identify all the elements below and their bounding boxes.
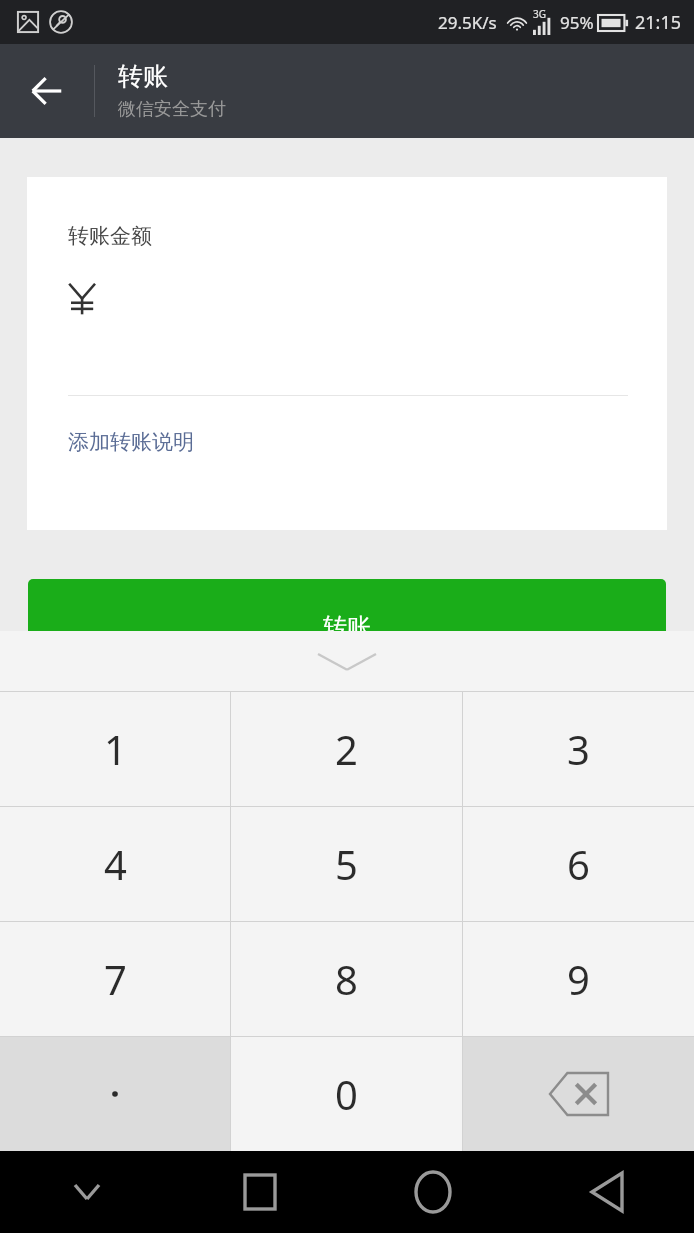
button[interactable]: 6 [463,807,694,921]
staticText: 95% [560,11,594,34]
button[interactable]: Recent apps [173,1151,346,1233]
staticText: 3 [567,722,590,776]
button[interactable]: Back [16,60,78,122]
button[interactable]: 7 [0,922,230,1036]
staticText: 8 [335,952,358,1006]
button[interactable]: 2 [231,692,462,806]
staticText: 29.5K/s [438,11,497,34]
button[interactable]: Back [520,1151,694,1233]
staticText: 1 [104,722,127,776]
button[interactable]: 1 [0,692,230,806]
button[interactable]: 添加转账说明 [27,423,214,461]
button[interactable]: 3 [463,692,694,806]
button[interactable]: 8 [231,922,462,1036]
staticText: 9 [567,952,590,1006]
staticText: 转账 [118,61,168,92]
button[interactable]: 0 [231,1037,462,1151]
staticText: 转账 [323,612,371,642]
button[interactable]: 5 [231,807,462,921]
button[interactable]: Hide keyboard [0,1151,173,1233]
staticText: 3G [533,7,546,21]
staticText: 7 [104,952,127,1006]
staticText: 0 [335,1067,358,1121]
button[interactable]: 4 [0,807,230,921]
staticText: 4 [104,837,127,891]
button[interactable]: Home [346,1151,520,1233]
staticText: 5 [335,837,358,891]
button[interactable] [0,1037,230,1151]
button[interactable]: 转账 [28,579,666,675]
button[interactable]: Delete [463,1037,694,1151]
staticText: 21:15 [635,10,682,35]
staticText: 2 [335,722,358,776]
staticText: 6 [567,837,590,891]
staticText: 转账金额 [68,223,152,249]
staticText: 微信安全支付 [118,98,226,121]
staticText: 添加转账说明 [68,429,194,455]
button[interactable]: 9 [463,922,694,1036]
